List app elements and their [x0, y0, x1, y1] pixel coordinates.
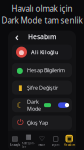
staticText: Kategoriler	[22, 141, 35, 149]
staticText: Hesabım	[64, 143, 75, 147]
button[interactable]: Hesabım	[62, 135, 76, 147]
staticText: Anasayfa	[10, 143, 20, 147]
staticText: ▢	[53, 135, 59, 142]
button[interactable]: ●	[12, 45, 72, 60]
staticText: Sepet	[52, 143, 60, 147]
staticText: Dark Mode	[27, 98, 41, 112]
button[interactable]: Anasayfa	[8, 135, 22, 147]
staticText: Şifre Değiştir	[27, 84, 58, 91]
button[interactable]: ⏻	[12, 116, 72, 130]
staticText: ▦	[25, 133, 31, 141]
button[interactable]: Sepet	[49, 135, 62, 147]
button[interactable]: Favori	[35, 135, 49, 147]
button[interactable]: ☾	[12, 98, 72, 112]
staticText: Hesabım	[28, 32, 56, 41]
staticText: ▤	[12, 135, 18, 142]
staticText: Dark Mode tam senlik	[1, 15, 82, 26]
button[interactable]: Kategoriler	[22, 133, 35, 149]
staticText: ☾	[16, 101, 23, 110]
staticText: Hesap Bilgilerim	[27, 67, 65, 74]
staticText: ▣	[66, 135, 72, 142]
staticText: ♡	[39, 135, 45, 142]
staticText: Ali Kiloğlu	[31, 49, 58, 56]
staticText: Havalı olmak için	[11, 3, 72, 14]
staticText: ‹	[15, 29, 19, 44]
staticText: Çıkış Yap	[27, 119, 48, 126]
staticText: Favori	[38, 143, 45, 147]
staticText: ●	[16, 66, 23, 75]
button[interactable]: ▮	[12, 81, 72, 95]
staticText: ⏻	[17, 119, 23, 126]
staticText: ▮	[18, 83, 22, 92]
button[interactable]: Back	[12, 32, 22, 42]
button[interactable]: ●	[12, 63, 72, 77]
staticText: ●	[18, 48, 24, 56]
